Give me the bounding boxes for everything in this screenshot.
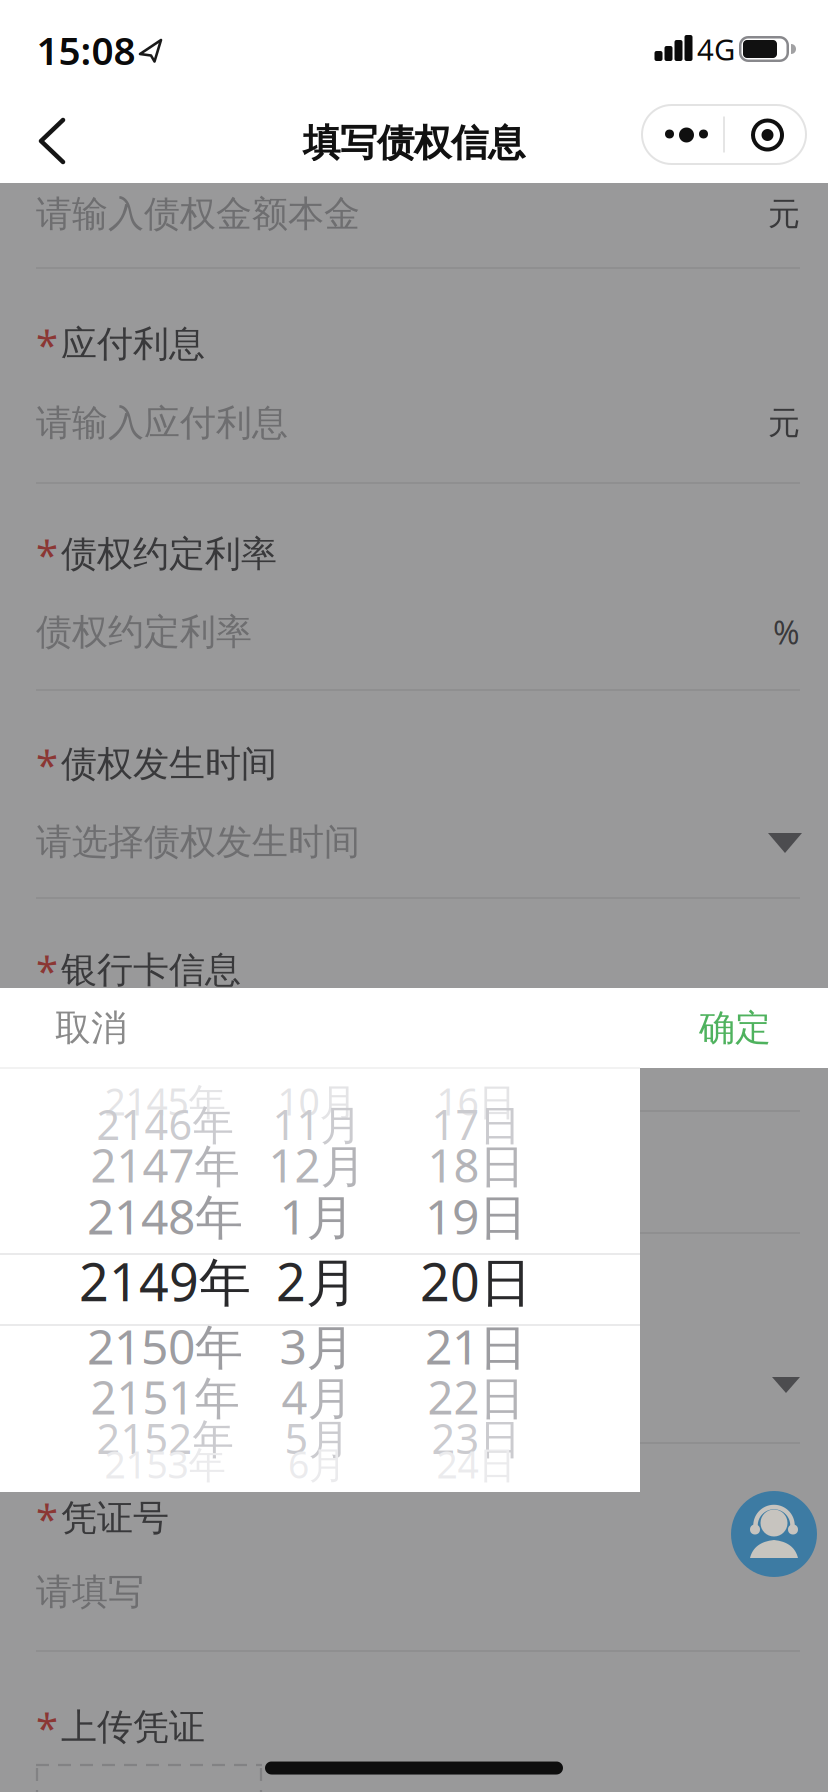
staticText: 凭证号 [61,1496,169,1540]
staticText: 22日 [427,1367,524,1427]
staticText: 2152年 [96,1411,233,1465]
staticText: 12月 [268,1135,365,1195]
staticText: 17日 [431,1097,520,1151]
staticText: 19日 [425,1184,527,1248]
staticText: % [773,611,800,653]
staticText: * [36,1700,58,1753]
staticText: 元 [768,194,800,234]
staticText: 元 [768,403,800,443]
staticText: 请填写 [36,1570,144,1614]
staticText: 2148年 [87,1184,243,1248]
staticText: 23日 [431,1411,520,1465]
button[interactable]: 请填写 [36,1562,800,1622]
staticText: 5月 [284,1411,349,1465]
staticText: 2145年 [104,1076,225,1126]
staticText: 2月 [276,1246,358,1316]
staticText: 填写债权信息 [303,120,525,166]
staticText: * [36,317,58,370]
staticText: 20日 [420,1246,532,1316]
staticText: 请选择债权发生时间 [36,820,360,864]
staticText: 21日 [425,1314,527,1378]
staticText: 2150年 [87,1314,243,1378]
staticText: 11月 [272,1097,361,1151]
staticText: 10月 [277,1076,356,1126]
button[interactable]: 债权约定利率 [36,602,800,662]
staticText: 取消 [55,1006,127,1050]
staticText: 15:08 [36,24,135,76]
button[interactable]: 请输入债权金额本金 [36,184,800,244]
staticText: 银行卡信息 [61,948,241,992]
staticText: 2151年 [90,1367,239,1427]
staticText: 债权约定利率 [61,532,277,576]
staticText: 18日 [427,1135,524,1195]
staticText: 4月 [281,1367,352,1427]
staticText: 请输入应付利息 [36,401,288,445]
staticText: 上传凭证 [61,1705,205,1749]
button[interactable]: 确定 [665,988,805,1068]
button[interactable]: 联系客服 [731,1491,817,1577]
staticText: 债权约定利率 [36,610,252,654]
staticText: 1月 [279,1184,354,1248]
staticText: 2147年 [90,1135,239,1195]
button[interactable]: 请选择债权发生时间 [36,812,800,872]
staticText: 债权发生时间 [61,742,277,786]
staticText: 16日 [436,1076,515,1126]
button[interactable]: 请输入应付利息 [36,393,800,453]
staticText: 3月 [279,1314,354,1378]
button[interactable]: 关闭小程序 [724,104,807,165]
staticText: 应付利息 [61,322,205,366]
staticText: * [36,527,58,580]
staticText: * [36,737,58,790]
staticText: 2146年 [96,1097,233,1151]
button[interactable]: 返回 [10,101,90,181]
staticText: 确定 [699,1006,771,1050]
staticText: 24日 [436,1439,515,1489]
staticText: 4G [697,29,735,68]
staticText: * [36,1491,58,1544]
button[interactable]: 更多 [644,104,727,165]
staticText: 2153年 [104,1439,225,1489]
staticText: 2149年 [79,1246,251,1316]
button[interactable]: 取消 [21,988,161,1068]
staticText: 请输入债权金额本金 [36,192,360,236]
staticText: * [36,943,58,996]
staticText: 6月 [288,1439,346,1489]
